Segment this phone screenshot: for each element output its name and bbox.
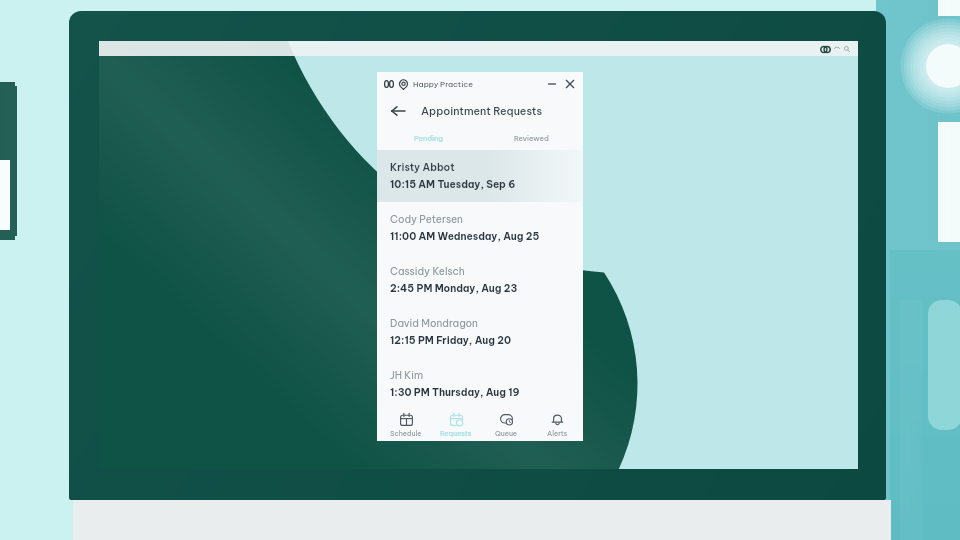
button[interactable]: Close [563, 77, 577, 91]
staticText: Cody Petersen [390, 213, 463, 226]
staticText: 10:15 AM Tuesday, Sep 6 [390, 178, 516, 191]
button[interactable]: Requests [431, 410, 481, 441]
staticText: Pending [414, 134, 444, 143]
staticText: Appointment Requests [421, 104, 543, 118]
button[interactable]: Cassidy Kelsch [377, 254, 583, 306]
button[interactable]: Reviewed [480, 127, 583, 150]
staticText: Requests [440, 429, 472, 438]
button[interactable]: Kristy Abbot [377, 150, 583, 202]
button[interactable]: Minimize [545, 77, 559, 91]
button[interactable]: Happy Practice app [820, 44, 830, 54]
button[interactable]: Cody Petersen [377, 202, 583, 254]
staticText: Alerts [547, 429, 568, 438]
button[interactable]: JH Kim [377, 358, 583, 410]
button[interactable]: Queue [481, 410, 532, 441]
button[interactable]: Search [843, 45, 851, 53]
staticText: 2:45 PM Monday, Aug 23 [390, 282, 518, 295]
staticText: Reviewed [514, 134, 549, 143]
staticText: 11:00 AM Wednesday, Aug 25 [390, 230, 540, 243]
staticText: Cassidy Kelsch [390, 265, 465, 278]
staticText: Kristy Abbot [390, 161, 455, 174]
button[interactable]: Network [833, 45, 841, 53]
button[interactable]: David Mondragon [377, 306, 583, 358]
staticText: David Mondragon [390, 317, 478, 330]
staticText: Schedule [390, 429, 422, 438]
staticText: Happy Practice [413, 79, 473, 89]
button[interactable]: Pending [377, 127, 480, 150]
button[interactable]: Alerts [532, 410, 583, 441]
button[interactable]: Schedule [381, 410, 431, 441]
staticText: Queue [495, 429, 518, 438]
button[interactable]: Back [388, 101, 408, 121]
staticText: JH Kim [390, 369, 424, 382]
staticText: 12:15 PM Friday, Aug 20 [390, 334, 511, 347]
staticText: 1:30 PM Thursday, Aug 19 [390, 386, 520, 399]
